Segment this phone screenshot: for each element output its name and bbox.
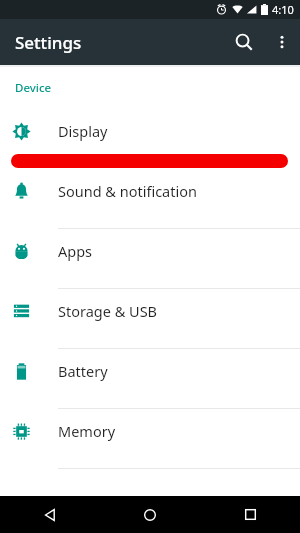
button[interactable]: More options xyxy=(264,24,300,60)
button[interactable]: Apps xyxy=(0,229,300,273)
button[interactable]: Memory xyxy=(0,409,300,453)
staticText: Device xyxy=(15,80,52,96)
staticText: Display xyxy=(58,121,108,141)
button[interactable]: Recents xyxy=(200,496,300,533)
staticText: Settings xyxy=(15,31,82,54)
button[interactable]: Battery xyxy=(0,349,300,393)
staticText: Memory xyxy=(58,421,116,441)
button[interactable]: Home xyxy=(100,496,200,533)
staticText: Storage & USB xyxy=(58,301,158,321)
staticText: Sound & notification xyxy=(58,181,197,201)
button[interactable]: Back xyxy=(0,496,100,533)
button[interactable]: Display xyxy=(0,109,300,153)
staticText: Apps xyxy=(58,241,93,261)
staticText: 4:10 xyxy=(272,2,294,17)
button[interactable]: Sound & notification xyxy=(0,169,300,213)
staticText: Battery xyxy=(58,361,108,381)
button[interactable]: Search xyxy=(224,22,264,62)
button[interactable]: Storage & USB xyxy=(0,289,300,333)
